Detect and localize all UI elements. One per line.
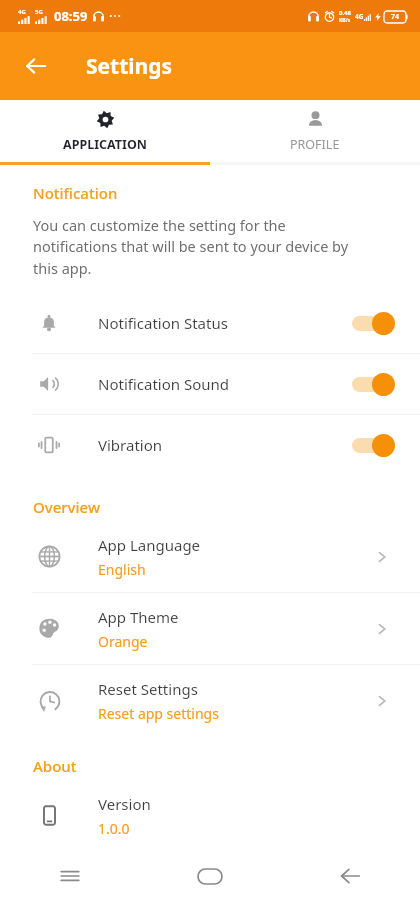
button[interactable]: Back	[280, 852, 420, 900]
button[interactable]: Version	[0, 780, 420, 851]
button[interactable]: App Language	[0, 521, 420, 592]
staticText: 5G	[35, 8, 43, 16]
staticText: Notification	[33, 183, 118, 203]
staticText: English	[98, 560, 146, 579]
staticText: PROFILE	[290, 136, 340, 153]
staticText: Notification Sound	[98, 374, 350, 394]
staticText: Settings	[86, 52, 173, 81]
button[interactable]: Back	[14, 44, 58, 88]
staticText: 1.0.0	[98, 819, 130, 838]
button[interactable]: Home	[140, 852, 280, 900]
staticText: Reset Settings	[98, 679, 198, 699]
staticText: APPLICATION	[63, 136, 147, 153]
button[interactable]: Notification Status	[0, 293, 420, 353]
button[interactable]: Notification Sound	[0, 354, 420, 414]
staticText: 74	[391, 12, 400, 22]
button[interactable]: Vibration	[0, 415, 420, 475]
staticText: Version	[98, 794, 151, 814]
staticText: Notification Status	[98, 313, 350, 333]
button[interactable]: Recents	[0, 852, 140, 900]
staticText: About	[33, 756, 77, 776]
staticText: Vibration	[98, 435, 350, 455]
staticText: 4G	[355, 12, 364, 21]
staticText: Overview	[33, 497, 100, 517]
staticText: You can customize the setting for the no…	[33, 215, 349, 279]
staticText: App Theme	[98, 607, 179, 627]
staticText: 4G	[18, 8, 26, 16]
staticText: Orange	[98, 632, 148, 651]
staticText: 08:59	[54, 7, 88, 25]
button[interactable]: App Theme	[0, 593, 420, 664]
button[interactable]: PROFILE	[210, 100, 420, 162]
staticText: KB/s	[339, 17, 351, 24]
staticText: 0.48	[339, 9, 351, 17]
staticText: Reset app settings	[98, 704, 219, 723]
staticText: App Language	[98, 535, 201, 555]
button[interactable]: Reset Settings	[0, 665, 420, 736]
button[interactable]: APPLICATION	[0, 100, 210, 162]
